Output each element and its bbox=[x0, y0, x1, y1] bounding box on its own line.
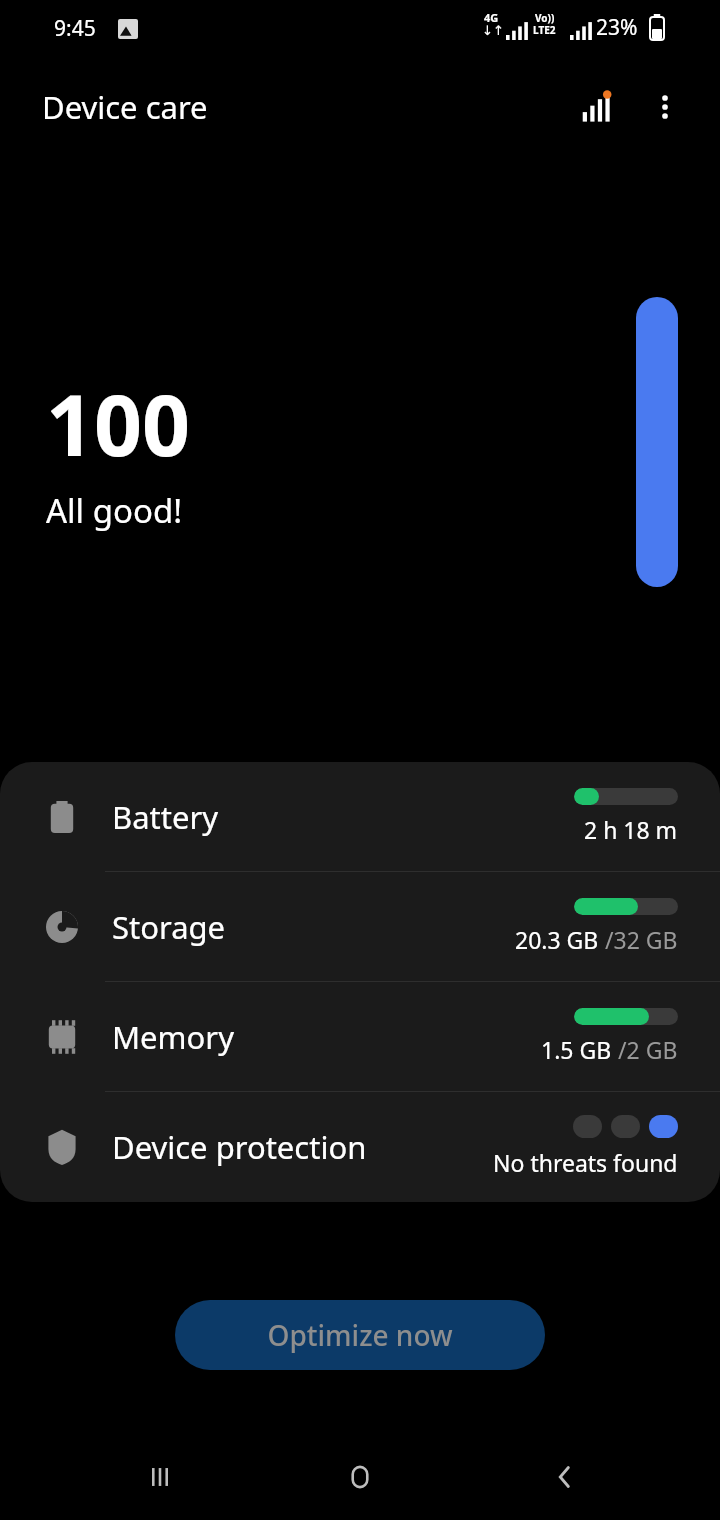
staticText: No threats found bbox=[493, 1147, 678, 1178]
staticText: Battery bbox=[112, 796, 219, 838]
staticText: Storage bbox=[112, 906, 226, 948]
staticText: Device care bbox=[42, 86, 208, 128]
button[interactable]: Recents bbox=[122, 1439, 198, 1515]
button[interactable]: Memory bbox=[0, 982, 720, 1091]
button[interactable]: More options bbox=[636, 78, 694, 136]
staticText: 2 h 18 m bbox=[584, 814, 678, 845]
staticText: 20.3 GB bbox=[515, 924, 605, 955]
staticText: 4G bbox=[484, 10, 499, 25]
staticText: 1.5 GB bbox=[541, 1034, 618, 1065]
button[interactable]: Optimize now bbox=[175, 1300, 545, 1370]
staticText: Optimize now bbox=[267, 1316, 453, 1354]
button[interactable]: Battery bbox=[0, 762, 720, 871]
button[interactable]: Home bbox=[322, 1439, 398, 1515]
staticText: ↓↑ bbox=[482, 23, 504, 38]
staticText: 9:45 bbox=[54, 14, 96, 43]
staticText: 100 bbox=[46, 366, 191, 480]
staticText: 23% bbox=[596, 13, 638, 42]
button[interactable]: Storage bbox=[0, 872, 720, 981]
staticText: All good! bbox=[46, 488, 183, 533]
staticText: Device protection bbox=[112, 1126, 367, 1168]
staticText: LTE2 bbox=[533, 23, 556, 37]
button[interactable]: Usage statistics bbox=[568, 78, 626, 136]
button[interactable]: Device protection bbox=[0, 1092, 720, 1201]
staticText: Vo)) bbox=[535, 11, 555, 25]
staticText: Memory bbox=[112, 1016, 234, 1058]
button[interactable]: Back bbox=[527, 1439, 603, 1515]
staticText: /32 GB bbox=[605, 924, 678, 955]
staticText: /2 GB bbox=[618, 1034, 678, 1065]
